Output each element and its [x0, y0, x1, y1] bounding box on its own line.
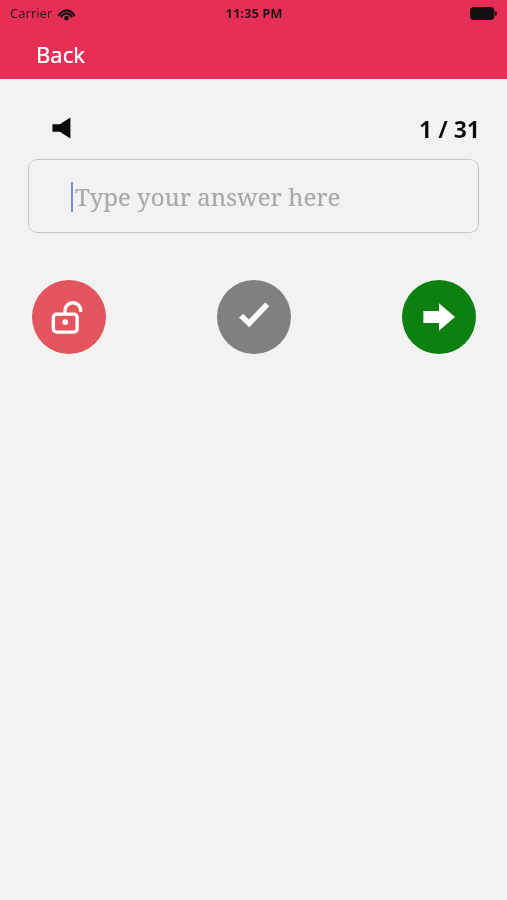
button[interactable]: Reveal answer — [32, 280, 106, 354]
staticText: Back — [36, 39, 85, 69]
staticText: Type your answer here — [75, 180, 341, 213]
button[interactable]: Next — [402, 280, 476, 354]
button[interactable]: Back — [26, 35, 95, 73]
staticText: 11:35 PM — [225, 4, 283, 22]
staticText: Carrier — [10, 4, 53, 22]
button[interactable]: Check answer — [217, 280, 291, 354]
staticText: 1 / 31 — [419, 113, 480, 144]
button[interactable]: Play audio — [46, 110, 81, 146]
button[interactable]: Type your answer here — [28, 159, 479, 233]
